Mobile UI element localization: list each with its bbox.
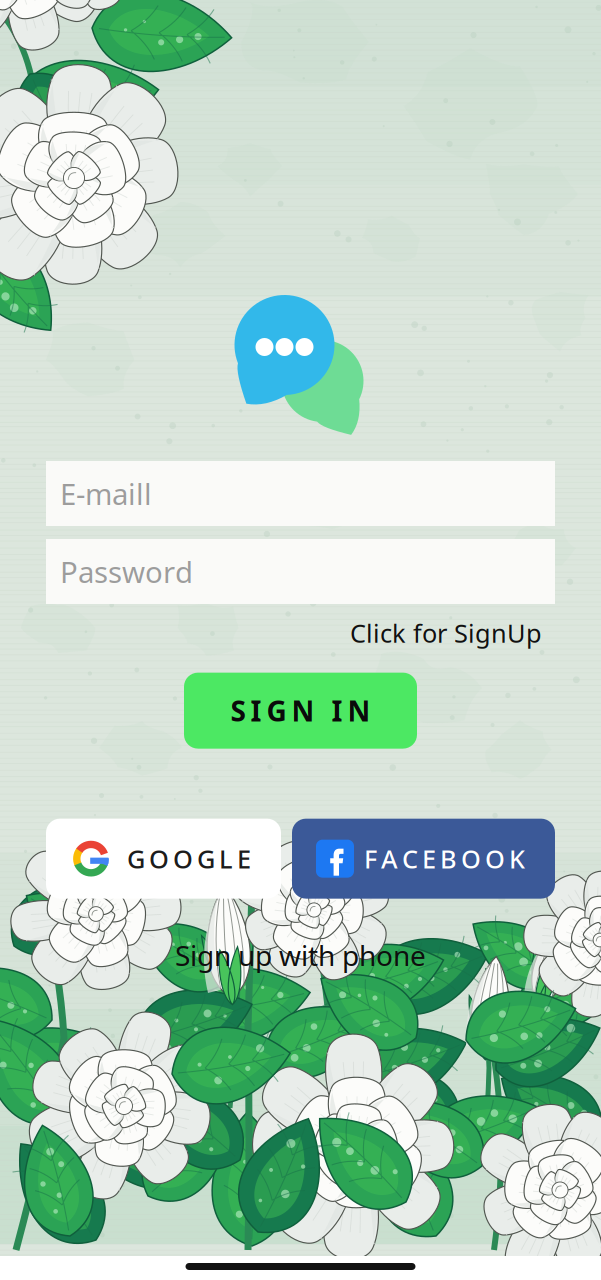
staticText: S I G N I N [230, 692, 370, 729]
staticText: Click for SignUp [350, 616, 542, 650]
button[interactable]: S I G N I N [184, 673, 417, 749]
staticText: Password [60, 552, 193, 591]
button[interactable]: Sign up with phone [175, 937, 426, 974]
button[interactable]: F A C E B O O K [292, 819, 555, 899]
button[interactable]: Click for SignUp [350, 616, 542, 650]
staticText: E-maill [60, 474, 152, 513]
button[interactable]: G O O G L E [46, 819, 281, 899]
staticText: G O O G L E [127, 842, 251, 875]
staticText: F A C E B O O K [364, 842, 525, 875]
staticText: Sign up with phone [175, 937, 426, 974]
